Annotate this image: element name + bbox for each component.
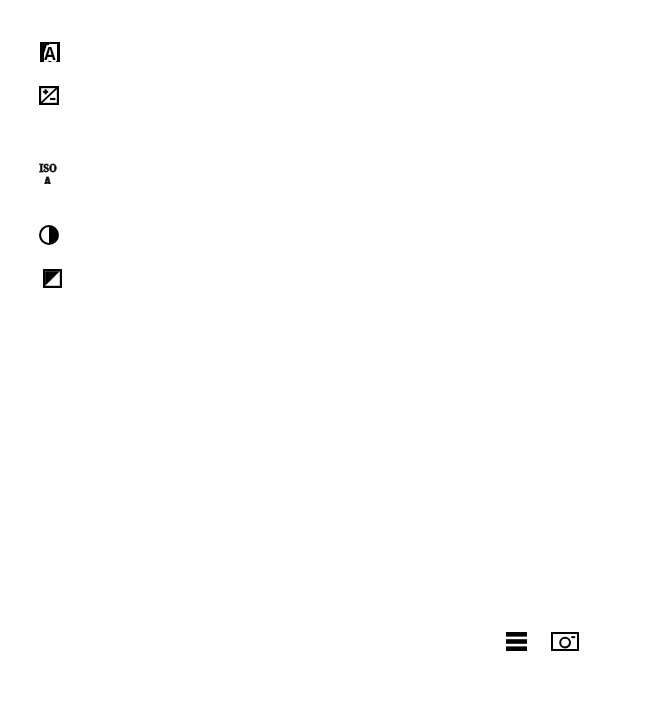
button[interactable]: Tone curve [43,269,62,288]
staticText: A [44,173,51,184]
staticText: A [44,42,56,62]
button[interactable]: ISO [31,161,64,187]
staticText: A [44,173,51,184]
button[interactable]: Exposure compensation [39,86,59,105]
staticText: ISO [39,161,57,175]
button[interactable]: Menu [506,632,527,651]
staticText: A [44,42,56,62]
staticText: ISO [39,161,57,175]
button[interactable]: Contrast [39,225,59,245]
button[interactable]: Camera [551,632,579,651]
button[interactable]: Flash auto [40,42,60,62]
